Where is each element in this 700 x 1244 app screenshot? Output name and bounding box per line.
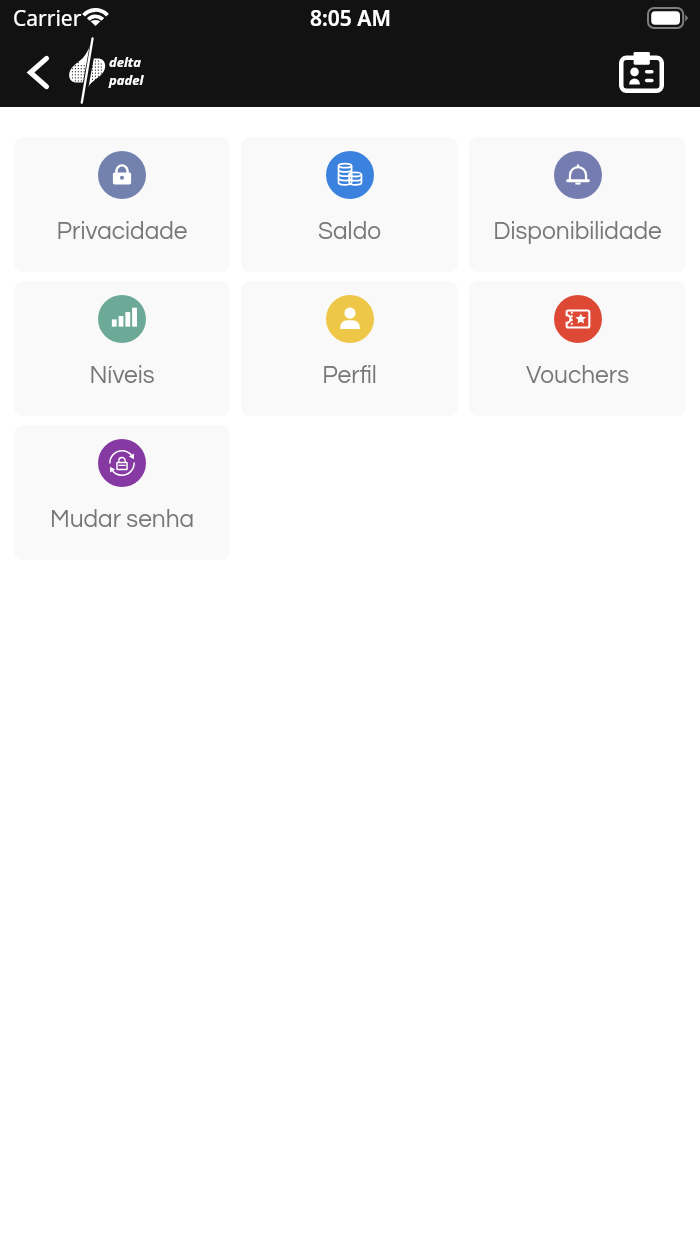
staticText: padel xyxy=(109,71,144,89)
button[interactable]: ID card xyxy=(613,44,669,100)
button[interactable]: Privacidade xyxy=(14,137,230,272)
staticText: Vouchers xyxy=(469,363,686,388)
staticText: Disponibilidade xyxy=(469,219,686,244)
button[interactable]: Saldo xyxy=(241,137,458,272)
button[interactable]: Níveis xyxy=(14,281,230,416)
staticText: Perfil xyxy=(241,363,458,388)
button[interactable]: Disponibilidade xyxy=(469,137,686,272)
staticText: Saldo xyxy=(241,219,458,244)
staticText: delta xyxy=(109,53,141,71)
staticText: Mudar senha xyxy=(14,507,230,532)
button[interactable]: Vouchers xyxy=(469,281,686,416)
staticText: 8:05 AM xyxy=(310,4,391,33)
staticText: Níveis xyxy=(14,363,230,388)
staticText: Carrier xyxy=(13,4,82,33)
button[interactable]: Perfil xyxy=(241,281,458,416)
button[interactable]: Mudar senha xyxy=(14,425,230,560)
button[interactable]: Back xyxy=(16,50,60,94)
staticText: Privacidade xyxy=(14,219,230,244)
